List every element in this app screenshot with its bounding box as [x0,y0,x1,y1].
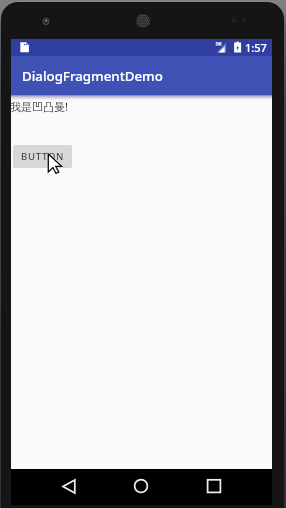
staticText: 1:57 [245,40,267,55]
staticText: DialogFragmentDemo [22,67,163,85]
button[interactable]: Back [51,468,87,504]
button[interactable]: Recent apps [196,468,232,504]
button[interactable]: BUTTON [13,145,72,168]
button[interactable]: Home [123,468,159,504]
staticText: BUTTON [21,150,65,163]
staticText: 我是凹凸曼! [10,99,68,114]
